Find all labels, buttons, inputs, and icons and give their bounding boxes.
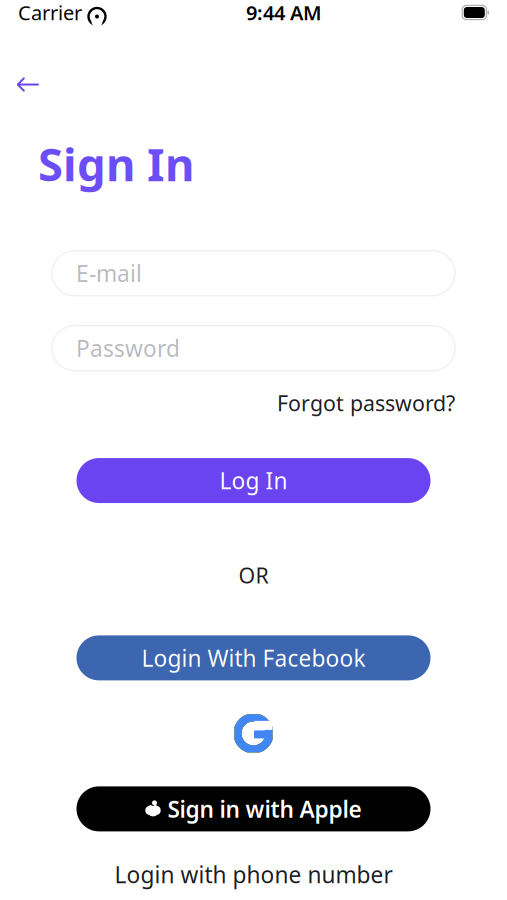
button[interactable]: Sign in with Apple xyxy=(76,786,430,831)
staticText: Login With Facebook xyxy=(141,643,365,673)
staticText: Password xyxy=(76,333,180,363)
button[interactable]: Forgot password? xyxy=(277,385,455,421)
button[interactable]: Login With Facebook xyxy=(76,635,430,680)
staticText: Forgot password? xyxy=(277,389,455,417)
staticText: Sign in with Apple xyxy=(167,794,361,824)
button[interactable]: Password xyxy=(52,326,455,371)
button[interactable]: E-mail xyxy=(52,251,455,296)
button[interactable]: Back xyxy=(0,63,53,105)
button[interactable]: Log In xyxy=(76,458,430,503)
staticText: Login with phone number xyxy=(114,859,392,889)
staticText: 9:44 AM xyxy=(246,0,322,26)
button[interactable]: Sign In xyxy=(0,129,194,198)
staticText: OR xyxy=(238,561,268,589)
staticText: E-mail xyxy=(76,258,142,288)
staticText: Carrier xyxy=(18,0,82,26)
staticText: Sign In xyxy=(38,133,194,194)
staticText: Log In xyxy=(219,465,287,496)
button[interactable]: Login with phone number xyxy=(114,854,392,894)
button[interactable]: Sign in with Google xyxy=(226,706,280,760)
